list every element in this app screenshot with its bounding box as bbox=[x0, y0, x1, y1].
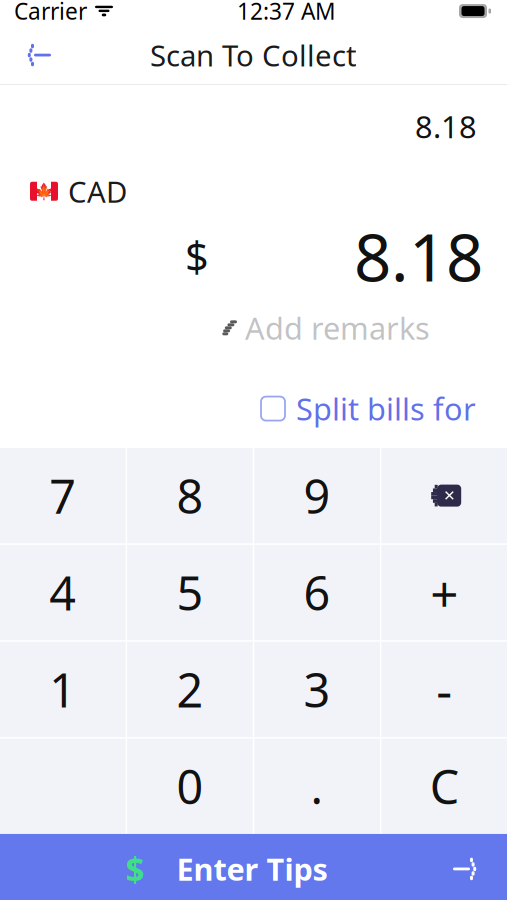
staticText: Add remarks bbox=[245, 307, 430, 348]
button[interactable]: + bbox=[381, 545, 507, 640]
button[interactable]: . bbox=[254, 739, 380, 834]
button[interactable]: 6 bbox=[254, 545, 380, 640]
button[interactable]: 5 bbox=[127, 545, 253, 640]
staticText: 7 bbox=[49, 465, 76, 527]
button[interactable]: Enter Tips bbox=[0, 834, 507, 900]
staticText: 1 bbox=[49, 658, 76, 720]
staticText: 8 bbox=[176, 465, 203, 527]
button[interactable]: 3 bbox=[254, 642, 380, 737]
staticText: ✕ bbox=[443, 487, 455, 504]
staticText: $ bbox=[185, 229, 209, 284]
staticText: - bbox=[436, 657, 452, 722]
staticText: CAD bbox=[68, 172, 127, 211]
button[interactable]: 0 bbox=[127, 739, 253, 834]
staticText: 8.18 bbox=[354, 213, 483, 299]
staticText: 5 bbox=[176, 561, 203, 623]
staticText: 3 bbox=[304, 658, 331, 720]
button[interactable]: C bbox=[381, 739, 507, 834]
button[interactable]: 2 bbox=[127, 642, 253, 737]
staticText: 12:37 AM bbox=[237, 0, 336, 26]
staticText: 8.18 bbox=[415, 106, 477, 147]
button[interactable]: 7 bbox=[0, 448, 126, 543]
staticText: . bbox=[311, 755, 324, 817]
button[interactable]: 1 bbox=[0, 642, 126, 737]
staticText: C bbox=[430, 755, 459, 817]
button[interactable]: Add remarks bbox=[216, 307, 430, 348]
staticText: 9 bbox=[304, 465, 331, 527]
staticText: 🍁 bbox=[34, 182, 54, 200]
button[interactable]: Delete bbox=[381, 448, 507, 543]
staticText: 6 bbox=[304, 561, 331, 623]
staticText: Enter Tips bbox=[176, 849, 327, 889]
staticText: 4 bbox=[49, 561, 76, 623]
button[interactable]: Split bills for bbox=[261, 388, 476, 429]
button[interactable]: - bbox=[381, 642, 507, 737]
button[interactable]: 8 bbox=[127, 448, 253, 543]
staticText: Split bills for bbox=[296, 388, 476, 429]
staticText: 0 bbox=[176, 755, 203, 817]
staticText: $ bbox=[125, 847, 144, 891]
staticText: Scan To Collect bbox=[150, 36, 357, 75]
button[interactable]: 9 bbox=[254, 448, 380, 543]
button[interactable]: 4 bbox=[0, 545, 126, 640]
staticText: 2 bbox=[176, 658, 203, 720]
button[interactable]: Back bbox=[14, 31, 62, 79]
staticText: Carrier bbox=[14, 0, 87, 26]
staticText: + bbox=[430, 560, 458, 625]
